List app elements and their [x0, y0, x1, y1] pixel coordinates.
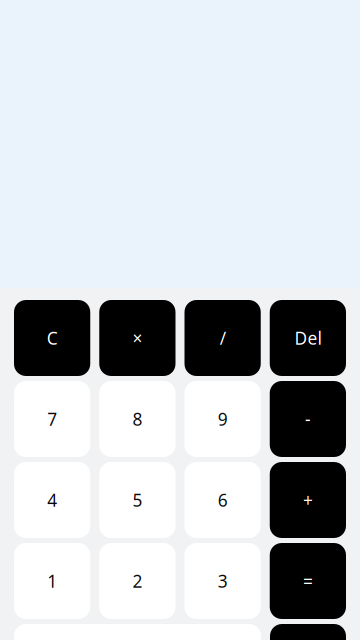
staticText: Del — [294, 326, 321, 349]
button[interactable]: Decimal point — [270, 624, 346, 640]
button[interactable]: Nine — [184, 381, 261, 457]
button[interactable]: Two — [99, 543, 175, 619]
button[interactable]: Plus — [270, 462, 346, 538]
staticText: × — [132, 326, 142, 349]
staticText: 5 — [132, 488, 142, 511]
staticText: 2 — [132, 569, 142, 592]
button[interactable]: Four — [14, 462, 90, 538]
staticText: 3 — [218, 569, 228, 592]
button[interactable]: One — [14, 543, 90, 619]
button[interactable]: Multiply — [99, 300, 175, 376]
staticText: 8 — [132, 407, 142, 430]
staticText: 7 — [47, 407, 57, 430]
staticText: + — [303, 488, 313, 511]
button[interactable]: Seven — [14, 381, 90, 457]
button[interactable]: Eight — [99, 381, 175, 457]
staticText: 1 — [47, 569, 57, 592]
staticText: - — [305, 407, 311, 430]
staticText: = — [303, 569, 313, 592]
button[interactable]: Divide — [184, 300, 261, 376]
staticText: C — [47, 326, 58, 349]
button[interactable]: Three — [184, 543, 261, 619]
staticText: 9 — [218, 407, 228, 430]
button[interactable]: Clear — [14, 300, 90, 376]
staticText: / — [220, 326, 226, 349]
button[interactable]: Five — [99, 462, 175, 538]
button[interactable]: Delete — [270, 300, 346, 376]
button[interactable]: Minus — [270, 381, 346, 457]
button[interactable]: Six — [184, 462, 261, 538]
staticText: 4 — [47, 488, 57, 511]
staticText: 6 — [218, 488, 228, 511]
button[interactable]: Equals — [270, 543, 346, 619]
